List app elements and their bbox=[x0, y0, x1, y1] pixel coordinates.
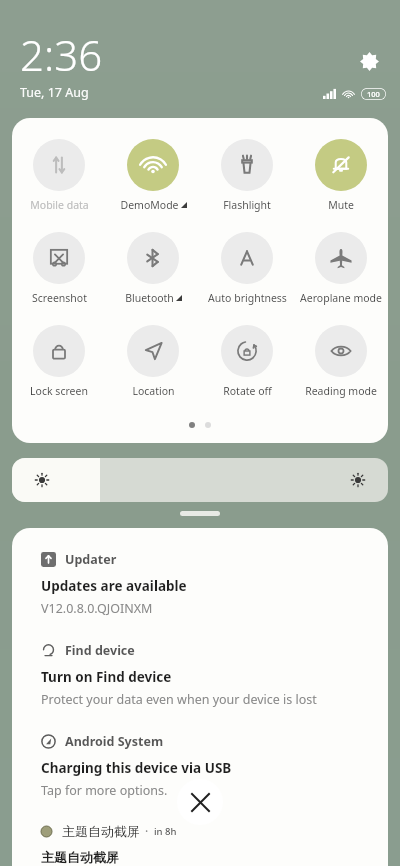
button[interactable]: Mobile data bbox=[12, 137, 106, 214]
button[interactable]: Expand bbox=[180, 511, 220, 516]
button[interactable]: Updater bbox=[41, 551, 368, 617]
staticText: Updater bbox=[65, 551, 117, 568]
staticText: 2:36 bbox=[20, 26, 103, 83]
staticText: Flashlight bbox=[223, 198, 271, 212]
staticText: Rotate off bbox=[223, 384, 272, 398]
button[interactable]: Reading mode bbox=[294, 323, 388, 400]
staticText: Find device bbox=[65, 642, 135, 659]
button[interactable]: DemoMode bbox=[106, 137, 200, 214]
staticText: DemoMode bbox=[120, 198, 179, 212]
staticText: Auto brightness bbox=[208, 291, 287, 305]
staticText: 100 bbox=[367, 89, 380, 99]
staticText: Protect your data even when your device … bbox=[41, 691, 317, 708]
button[interactable]: Screenshot bbox=[12, 230, 106, 307]
staticText: Turn on Find device bbox=[41, 668, 172, 686]
button[interactable]: Aeroplane mode bbox=[294, 230, 388, 307]
staticText: Location bbox=[132, 384, 175, 398]
staticText: in 8h bbox=[154, 825, 177, 838]
staticText: · bbox=[145, 823, 149, 839]
button[interactable]: Auto brightness bbox=[200, 230, 294, 307]
staticText: Reading mode bbox=[305, 384, 377, 398]
staticText: Mobile data bbox=[30, 198, 89, 212]
button[interactable]: Mute bbox=[294, 137, 388, 214]
staticText: Bluetooth bbox=[125, 291, 174, 305]
button[interactable]: Brightness bbox=[12, 458, 388, 502]
staticText: Android System bbox=[65, 733, 164, 750]
staticText: Updates are available bbox=[41, 577, 187, 595]
button[interactable]: Settings bbox=[352, 44, 386, 78]
button[interactable]: Flashlight bbox=[200, 137, 294, 214]
staticText: 主题自动截屏 bbox=[41, 849, 119, 865]
button[interactable]: Lock screen bbox=[12, 323, 106, 400]
staticText: Aeroplane mode bbox=[300, 291, 382, 305]
button[interactable]: Rotate off bbox=[200, 323, 294, 400]
button[interactable]: Android System bbox=[41, 733, 368, 799]
staticText: Lock screen bbox=[30, 384, 88, 398]
button[interactable]: 主题自动截屏 bbox=[41, 823, 177, 839]
staticText: Screenshot bbox=[32, 291, 87, 305]
staticText: 主题自动截屏 bbox=[62, 823, 140, 839]
button[interactable]: Location bbox=[106, 323, 200, 400]
button[interactable]: Bluetooth bbox=[106, 230, 200, 307]
staticText: V12.0.8.0.QJOINXM bbox=[41, 600, 153, 617]
button[interactable]: Find device bbox=[41, 642, 368, 708]
staticText: Tap for more options. bbox=[41, 782, 168, 799]
button[interactable]: Clear all notifications bbox=[177, 779, 223, 825]
staticText: Mute bbox=[328, 198, 354, 212]
staticText: Tue, 17 Aug bbox=[20, 84, 89, 101]
staticText: Charging this device via USB bbox=[41, 759, 232, 777]
